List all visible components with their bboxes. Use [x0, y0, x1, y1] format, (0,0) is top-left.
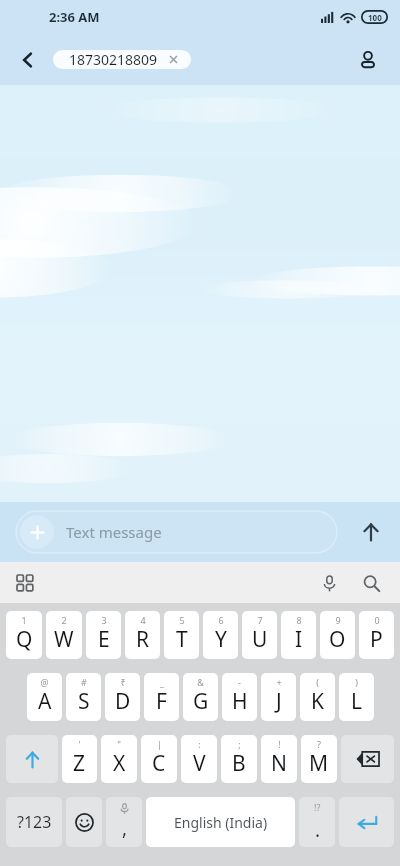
button[interactable]: 2 [46, 611, 82, 659]
staticText: U [252, 625, 268, 654]
staticText: 100 [368, 12, 382, 23]
button[interactable]: 7 [242, 611, 277, 659]
staticText: J [276, 687, 282, 716]
staticText: H [232, 687, 248, 716]
staticText: X [113, 749, 126, 778]
staticText: " [117, 738, 121, 750]
staticText: Z [73, 749, 86, 778]
button[interactable]: _ [144, 673, 179, 721]
button[interactable]: + [261, 673, 296, 721]
staticText: : [198, 738, 201, 750]
staticText: 4 [140, 614, 146, 626]
button[interactable]: ? [301, 735, 337, 783]
staticText: | [157, 738, 162, 750]
staticText: K [311, 687, 324, 716]
staticText: Y [215, 625, 227, 654]
button[interactable]: ) [339, 673, 374, 721]
button[interactable]: English (India) [146, 797, 295, 847]
button[interactable]: Shift [6, 735, 58, 783]
button[interactable]: ! [261, 735, 297, 783]
staticText: V [193, 749, 206, 778]
button[interactable]: Backspace [341, 735, 394, 783]
staticText: - [238, 676, 241, 688]
button[interactable]: 0 [359, 611, 394, 659]
button[interactable]: - [222, 673, 257, 721]
button[interactable]: # [66, 673, 101, 721]
button[interactable]: 3 [86, 611, 121, 659]
staticText: N [271, 749, 287, 778]
button[interactable]: 6 [203, 611, 238, 659]
button[interactable]: Search [354, 566, 388, 600]
staticText: !? [314, 801, 321, 813]
staticText: F [156, 687, 167, 716]
staticText: M [309, 749, 329, 778]
button[interactable]: ' [62, 735, 97, 783]
staticText: ₹ [120, 676, 126, 688]
button[interactable]: 5 [164, 611, 199, 659]
staticText: ?123 [17, 811, 52, 833]
staticText: W [54, 625, 74, 654]
button[interactable]: 9 [320, 611, 355, 659]
button[interactable]: Enter [339, 797, 394, 847]
button[interactable]: " [101, 735, 137, 783]
staticText: 0 [374, 614, 380, 626]
staticText: 2 [61, 614, 67, 626]
staticText: B [232, 749, 246, 778]
staticText: English (India) [174, 813, 268, 832]
staticText: . [315, 817, 321, 843]
staticText: G [193, 687, 209, 716]
button[interactable]: ; [221, 735, 257, 783]
staticText: ; [238, 738, 241, 750]
staticText: 8 [296, 614, 302, 626]
staticText: I [295, 625, 303, 654]
button[interactable]: 18730218809 [53, 50, 191, 69]
button[interactable]: ( [300, 673, 335, 721]
staticText: ! [278, 738, 281, 750]
staticText: T [176, 625, 188, 654]
staticText: 1 [21, 614, 27, 626]
staticText: & [197, 676, 204, 688]
button[interactable]: 8 [281, 611, 316, 659]
button[interactable]: @ [27, 673, 62, 721]
button[interactable]: Contact [348, 40, 388, 80]
staticText: Q [16, 625, 33, 654]
staticText: O [329, 625, 346, 654]
staticText: ? [317, 738, 321, 750]
button[interactable]: Text message [16, 511, 337, 553]
button[interactable]: Emoji [66, 797, 102, 847]
button[interactable]: Symbols [6, 797, 62, 847]
staticText: # [81, 676, 87, 688]
staticText: 7 [257, 614, 263, 626]
staticText: ) [355, 676, 358, 688]
staticText: P [370, 625, 383, 654]
button[interactable]: Keyboard menu [8, 566, 42, 600]
staticText: L [351, 687, 363, 716]
staticText: 2:36 AM [49, 8, 100, 26]
button[interactable]: & [183, 673, 218, 721]
button[interactable]: : [181, 735, 217, 783]
staticText: E [98, 625, 110, 654]
staticText: R [136, 625, 150, 654]
button[interactable]: Period [299, 797, 335, 847]
staticText: @ [40, 676, 49, 688]
button[interactable]: | [141, 735, 177, 783]
staticText: S [78, 687, 90, 716]
button[interactable]: 1 [6, 611, 42, 659]
button[interactable]: 4 [125, 611, 160, 659]
button[interactable]: ₹ [105, 673, 140, 721]
staticText: ' [78, 738, 81, 750]
staticText: 9 [335, 614, 341, 626]
staticText: ( [316, 676, 319, 688]
staticText: + [276, 676, 282, 688]
staticText: 6 [218, 614, 224, 626]
button[interactable]: Comma [106, 797, 142, 847]
staticText: C [152, 749, 166, 778]
staticText: _ [160, 676, 164, 688]
button[interactable]: Back [8, 40, 48, 80]
staticText: D [115, 687, 131, 716]
button[interactable]: Voice input [312, 566, 346, 600]
staticText: Text message [66, 522, 162, 542]
staticText: A [38, 687, 52, 716]
staticText: 3 [101, 614, 107, 626]
button[interactable]: Send [350, 511, 392, 553]
